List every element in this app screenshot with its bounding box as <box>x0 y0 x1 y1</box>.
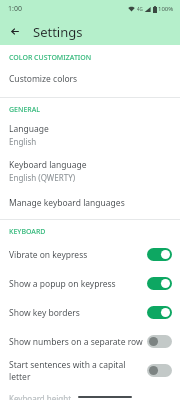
button[interactable]: Vibrate on keypress <box>0 240 180 269</box>
button[interactable]: Show a popup on keypress <box>0 269 180 298</box>
staticText: Show a popup on keypress <box>9 278 116 290</box>
staticText: Manage keyboard languages <box>9 197 125 209</box>
button[interactable]: Back <box>7 23 24 40</box>
staticText: GENERAL <box>9 105 180 115</box>
staticText: COLOR CUSTOMIZATION <box>9 53 180 63</box>
staticText: Show key borders <box>9 307 80 319</box>
staticText: 100% <box>158 5 174 13</box>
button[interactable]: Show key borders <box>0 298 180 327</box>
staticText: KEYBOARD <box>9 227 180 237</box>
staticText: Show numbers on a separate row <box>9 336 143 348</box>
staticText: Keyboard language <box>9 159 87 171</box>
staticText: English (QWERTY) <box>9 172 76 183</box>
button[interactable]: Customize colors <box>0 71 180 87</box>
button[interactable]: Manage keyboard languages <box>0 195 180 211</box>
staticText: 4G <box>137 6 143 12</box>
button[interactable]: Language <box>0 122 180 148</box>
staticText: Language <box>9 123 49 135</box>
button[interactable]: Start sentences with a capital letter <box>0 356 180 385</box>
button[interactable]: Keyboard language <box>0 158 180 184</box>
button[interactable]: Keyboard height slider <box>78 396 132 398</box>
staticText: Customize colors <box>9 73 78 85</box>
staticText: Settings <box>33 23 83 41</box>
staticText: Start sentences with a capital letter <box>9 359 147 383</box>
staticText: 1:00 <box>8 4 22 14</box>
staticText: English <box>9 136 37 147</box>
staticText: Keyboard height <box>9 393 72 400</box>
staticText: Vibrate on keypress <box>9 249 88 261</box>
button[interactable]: Show numbers on a separate row <box>0 327 180 356</box>
